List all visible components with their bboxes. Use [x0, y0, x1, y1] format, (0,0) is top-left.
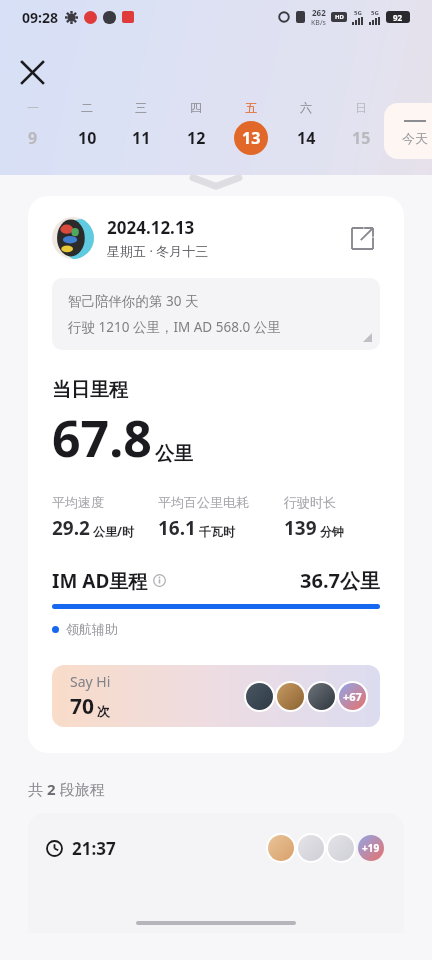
button[interactable]: 日 — [333, 100, 388, 155]
staticText: 星期五 · 冬月十三 — [107, 242, 209, 260]
staticText: 三 — [135, 100, 147, 115]
staticText: 公里/时 — [93, 523, 134, 539]
staticText: 当日里程 — [52, 378, 128, 402]
staticText: 5G — [354, 9, 362, 17]
staticText: +67 — [343, 689, 362, 704]
staticText: 次 — [97, 703, 110, 719]
button[interactable]: 一 — [6, 100, 60, 155]
staticText: 67.8 — [52, 404, 152, 472]
staticText: 15 — [352, 127, 371, 149]
staticText: 11 — [132, 127, 151, 149]
button[interactable]: 六 — [278, 100, 333, 155]
other: Info — [153, 574, 166, 587]
staticText: 21:37 — [72, 837, 116, 860]
staticText: 平均百公里电耗 — [158, 494, 249, 510]
staticText: 36.7公里 — [300, 567, 380, 594]
staticText: 千瓦时 — [199, 524, 235, 539]
staticText: 13 — [242, 127, 261, 149]
staticText: 92 — [393, 12, 403, 23]
button[interactable]: 五 — [223, 100, 278, 155]
staticText: 五 — [245, 100, 257, 115]
staticText: 14 — [297, 127, 316, 149]
staticText: 5G — [371, 9, 379, 17]
staticText: 六 — [300, 100, 312, 115]
staticText: 16.1 — [158, 515, 196, 541]
staticText: KB/s — [311, 18, 326, 28]
staticText: HD — [335, 13, 344, 21]
staticText: +19 — [362, 841, 380, 855]
button[interactable]: 21:37 — [28, 813, 404, 933]
staticText: 分钟 — [320, 524, 344, 539]
staticText: 12 — [187, 127, 206, 149]
staticText: 09:28 — [22, 8, 58, 27]
staticText: 262 — [312, 7, 326, 18]
button[interactable]: 三 — [114, 100, 168, 155]
staticText: 9 — [28, 127, 38, 149]
staticText: 2 — [47, 779, 56, 799]
button[interactable]: 今天 — [384, 103, 432, 159]
staticText: 公里 — [155, 442, 193, 466]
button[interactable]: 四 — [168, 100, 223, 155]
button[interactable]: 智己陪伴你的第 30 天 — [52, 278, 380, 350]
staticText: 二 — [81, 100, 93, 115]
staticText: 共 — [28, 779, 47, 799]
staticText: IM AD里程 — [52, 568, 148, 594]
staticText: 2024.12.13 — [107, 216, 195, 239]
staticText: 智己陪伴你的第 30 天 — [68, 292, 199, 310]
staticText: 今天 — [402, 130, 428, 146]
staticText: 行驶 1210 公里，IM AD 568.0 公里 — [68, 318, 281, 336]
staticText: 领航辅助 — [66, 621, 118, 637]
staticText: 四 — [190, 100, 202, 115]
button[interactable]: Say Hi — [52, 665, 380, 727]
staticText: 行驶时长 — [284, 494, 336, 510]
button[interactable]: 二 — [60, 100, 114, 155]
staticText: 一 — [27, 100, 39, 115]
staticText: 139 — [284, 515, 317, 541]
staticText: Say Hi — [70, 672, 111, 691]
staticText: 29.2 — [52, 515, 90, 541]
staticText: 段旅程 — [56, 779, 105, 799]
staticText: 10 — [78, 127, 97, 149]
button[interactable]: Open detail — [344, 220, 380, 256]
staticText: 70 — [70, 692, 95, 721]
staticText: 平均速度 — [52, 494, 104, 510]
staticText: 日 — [355, 100, 367, 115]
button[interactable]: Close — [10, 50, 54, 94]
